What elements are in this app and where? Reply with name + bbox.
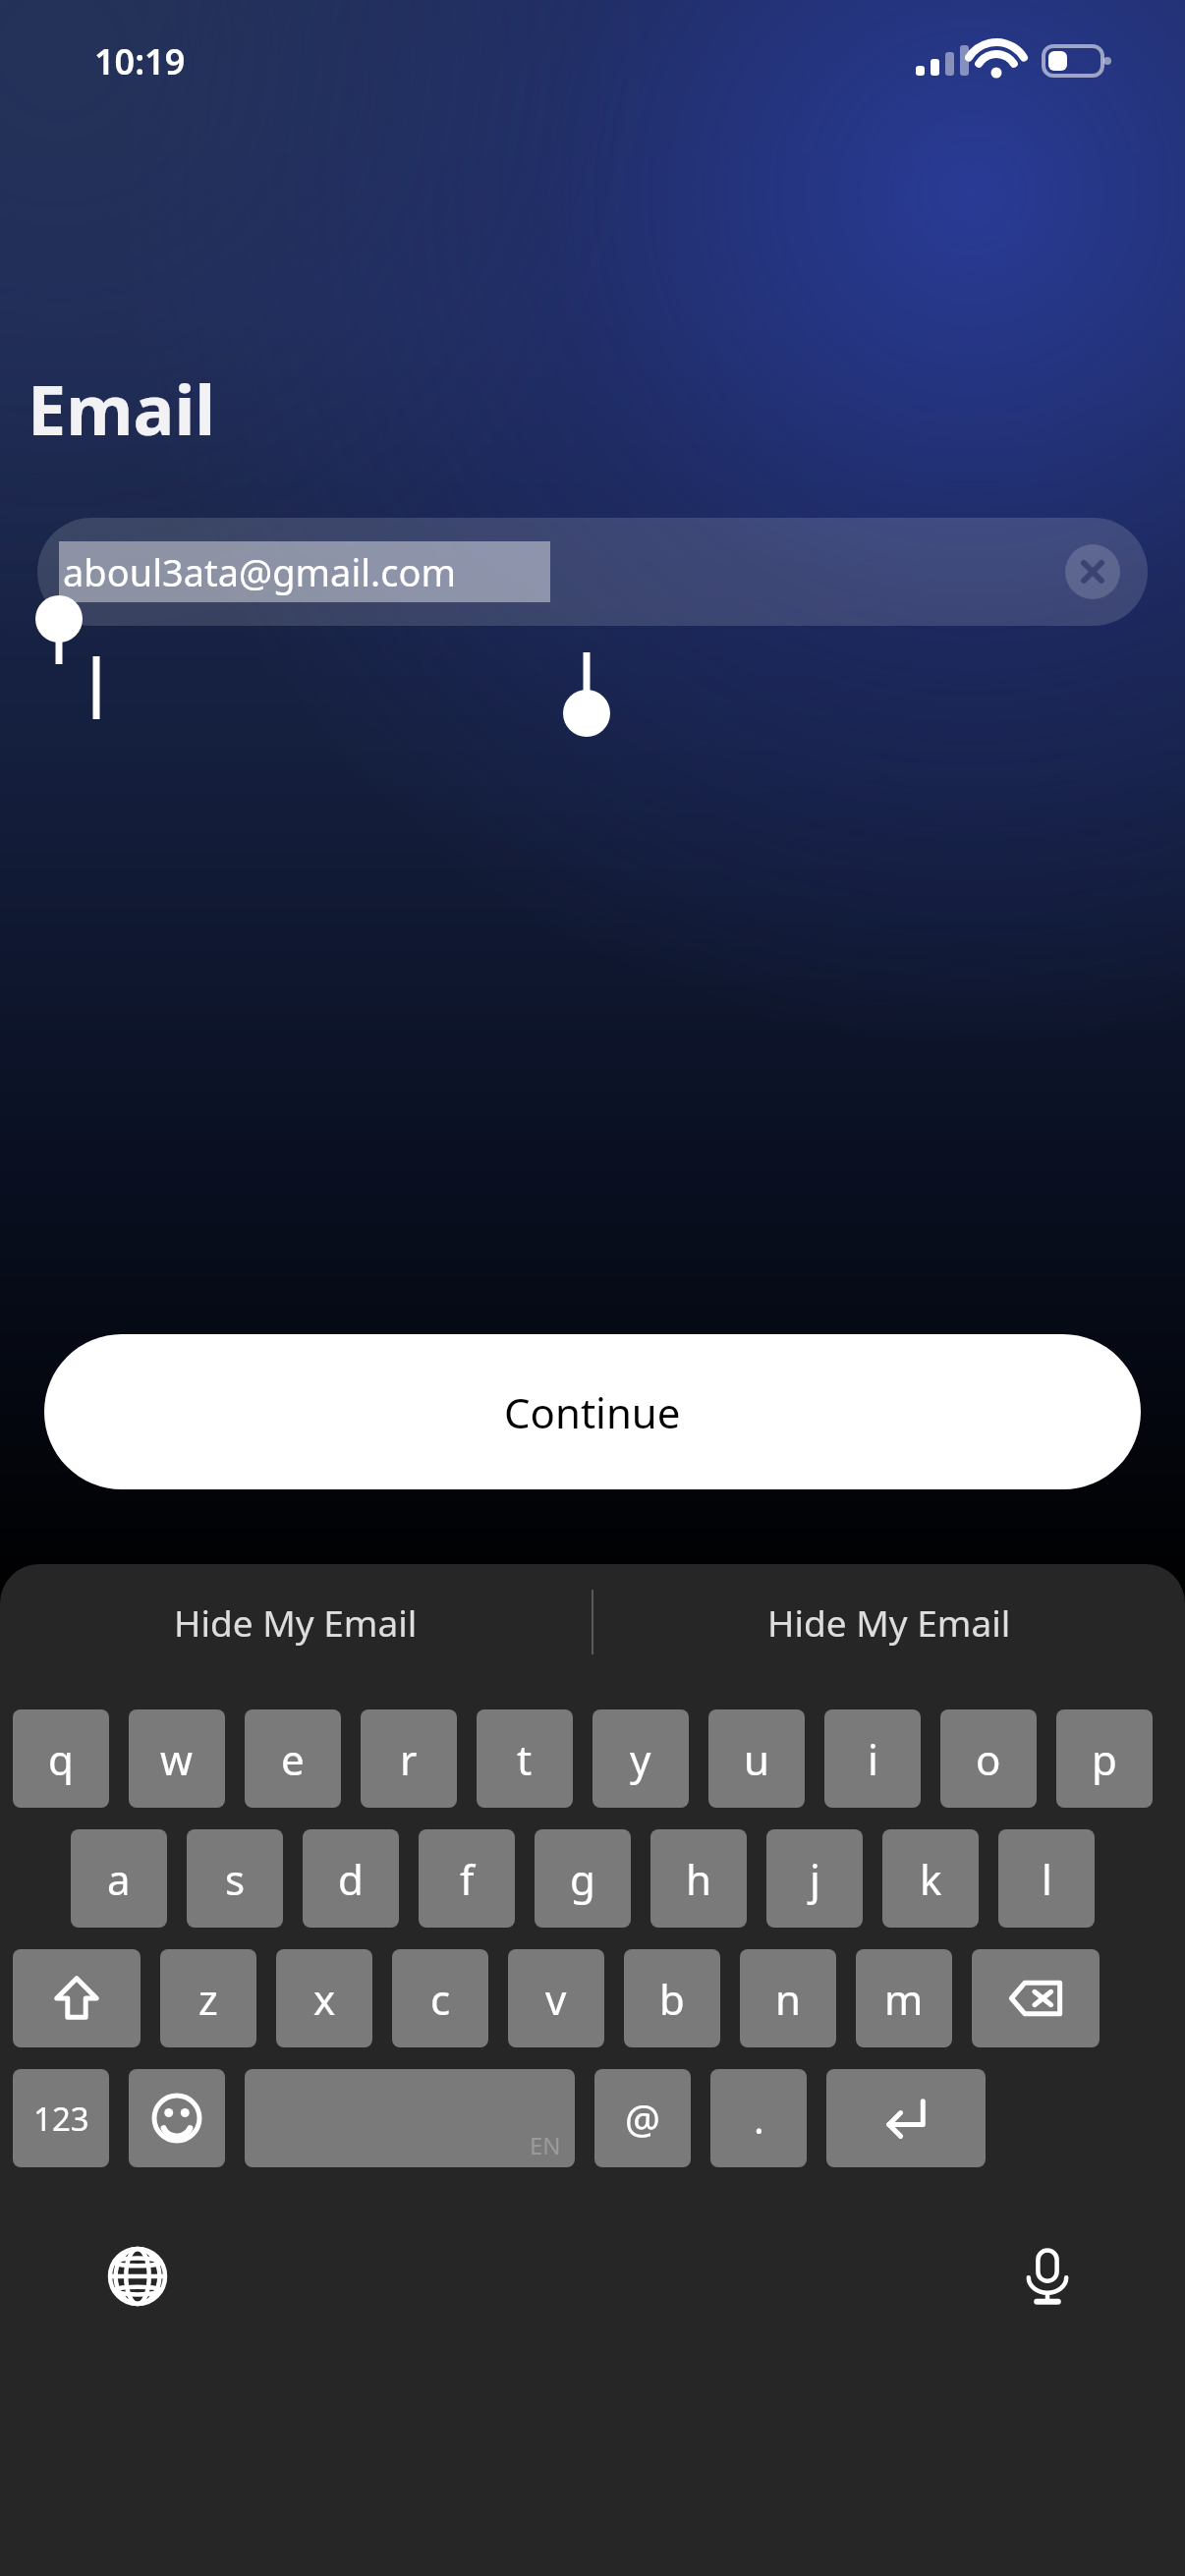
button[interactable]: w: [129, 1709, 225, 1808]
staticText: w: [160, 1731, 194, 1787]
button[interactable]: Hide My Email: [593, 1564, 1185, 1680]
button[interactable]: z: [160, 1949, 256, 2047]
button[interactable]: p: [1056, 1709, 1153, 1808]
button[interactable]: f: [419, 1829, 515, 1928]
button[interactable]: j: [766, 1829, 863, 1928]
button[interactable]: Hide My Email: [0, 1564, 592, 1680]
button[interactable]: k: [882, 1829, 979, 1928]
staticText: 123: [33, 2097, 89, 2141]
button[interactable]: Voice input: [1008, 2237, 1087, 2316]
button[interactable]: Continue: [44, 1334, 1141, 1489]
button[interactable]: m: [856, 1949, 952, 2047]
staticText: @: [625, 2092, 660, 2145]
staticText: a: [107, 1851, 131, 1907]
staticText: aboul3ata@gmail.com: [63, 546, 456, 597]
button[interactable]: o: [940, 1709, 1037, 1808]
staticText: p: [1092, 1731, 1117, 1787]
staticText: k: [920, 1851, 942, 1907]
staticText: .: [754, 2092, 764, 2145]
staticText: t: [517, 1731, 533, 1787]
staticText: s: [225, 1851, 246, 1907]
button[interactable]: q: [13, 1709, 109, 1808]
staticText: n: [775, 1971, 801, 2027]
staticText: g: [570, 1851, 595, 1907]
button[interactable]: e: [245, 1709, 341, 1808]
staticText: z: [198, 1971, 218, 2027]
staticText: c: [430, 1971, 451, 2027]
staticText: Hide My Email: [767, 1597, 1011, 1647]
button[interactable]: h: [650, 1829, 747, 1928]
button[interactable]: a: [71, 1829, 167, 1928]
button[interactable]: b: [624, 1949, 720, 2047]
staticText: e: [281, 1731, 305, 1787]
staticText: f: [460, 1851, 475, 1907]
staticText: y: [630, 1731, 651, 1787]
button[interactable]: i: [824, 1709, 921, 1808]
button[interactable]: n: [740, 1949, 836, 2047]
staticText: b: [659, 1971, 685, 2027]
button[interactable]: Space: [245, 2069, 575, 2167]
button[interactable]: s: [187, 1829, 283, 1928]
button[interactable]: aboul3ata@gmail.com: [37, 518, 1148, 626]
button[interactable]: Shift: [13, 1949, 141, 2047]
button[interactable]: x: [276, 1949, 372, 2047]
button[interactable]: c: [392, 1949, 488, 2047]
staticText: Email: [28, 362, 216, 455]
staticText: m: [884, 1971, 924, 2027]
button[interactable]: @: [594, 2069, 691, 2167]
staticText: EN: [530, 2129, 561, 2161]
staticText: u: [744, 1731, 769, 1787]
button[interactable]: Emoji: [129, 2069, 225, 2167]
staticText: v: [545, 1971, 567, 2027]
staticText: Continue: [504, 1384, 681, 1440]
button[interactable]: .: [710, 2069, 807, 2167]
button[interactable]: Change keyboard language: [98, 2237, 177, 2316]
staticText: h: [686, 1851, 711, 1907]
staticText: j: [810, 1851, 820, 1907]
staticText: l: [1042, 1851, 1052, 1907]
staticText: 10:19: [94, 37, 186, 85]
staticText: r: [400, 1731, 418, 1787]
button[interactable]: y: [592, 1709, 689, 1808]
staticText: o: [976, 1731, 1001, 1787]
button[interactable]: u: [708, 1709, 805, 1808]
button[interactable]: g: [535, 1829, 631, 1928]
staticText: x: [313, 1971, 336, 2027]
button[interactable]: Clear text: [1065, 544, 1120, 599]
staticText: Hide My Email: [174, 1597, 418, 1647]
button[interactable]: 123: [13, 2069, 109, 2167]
button[interactable]: Return: [826, 2069, 986, 2167]
staticText: d: [338, 1851, 364, 1907]
button[interactable]: t: [477, 1709, 573, 1808]
button[interactable]: Backspace: [972, 1949, 1100, 2047]
button[interactable]: r: [361, 1709, 457, 1808]
button[interactable]: d: [303, 1829, 399, 1928]
staticText: i: [868, 1731, 878, 1787]
staticText: q: [48, 1731, 74, 1787]
button[interactable]: l: [998, 1829, 1095, 1928]
button[interactable]: v: [508, 1949, 604, 2047]
